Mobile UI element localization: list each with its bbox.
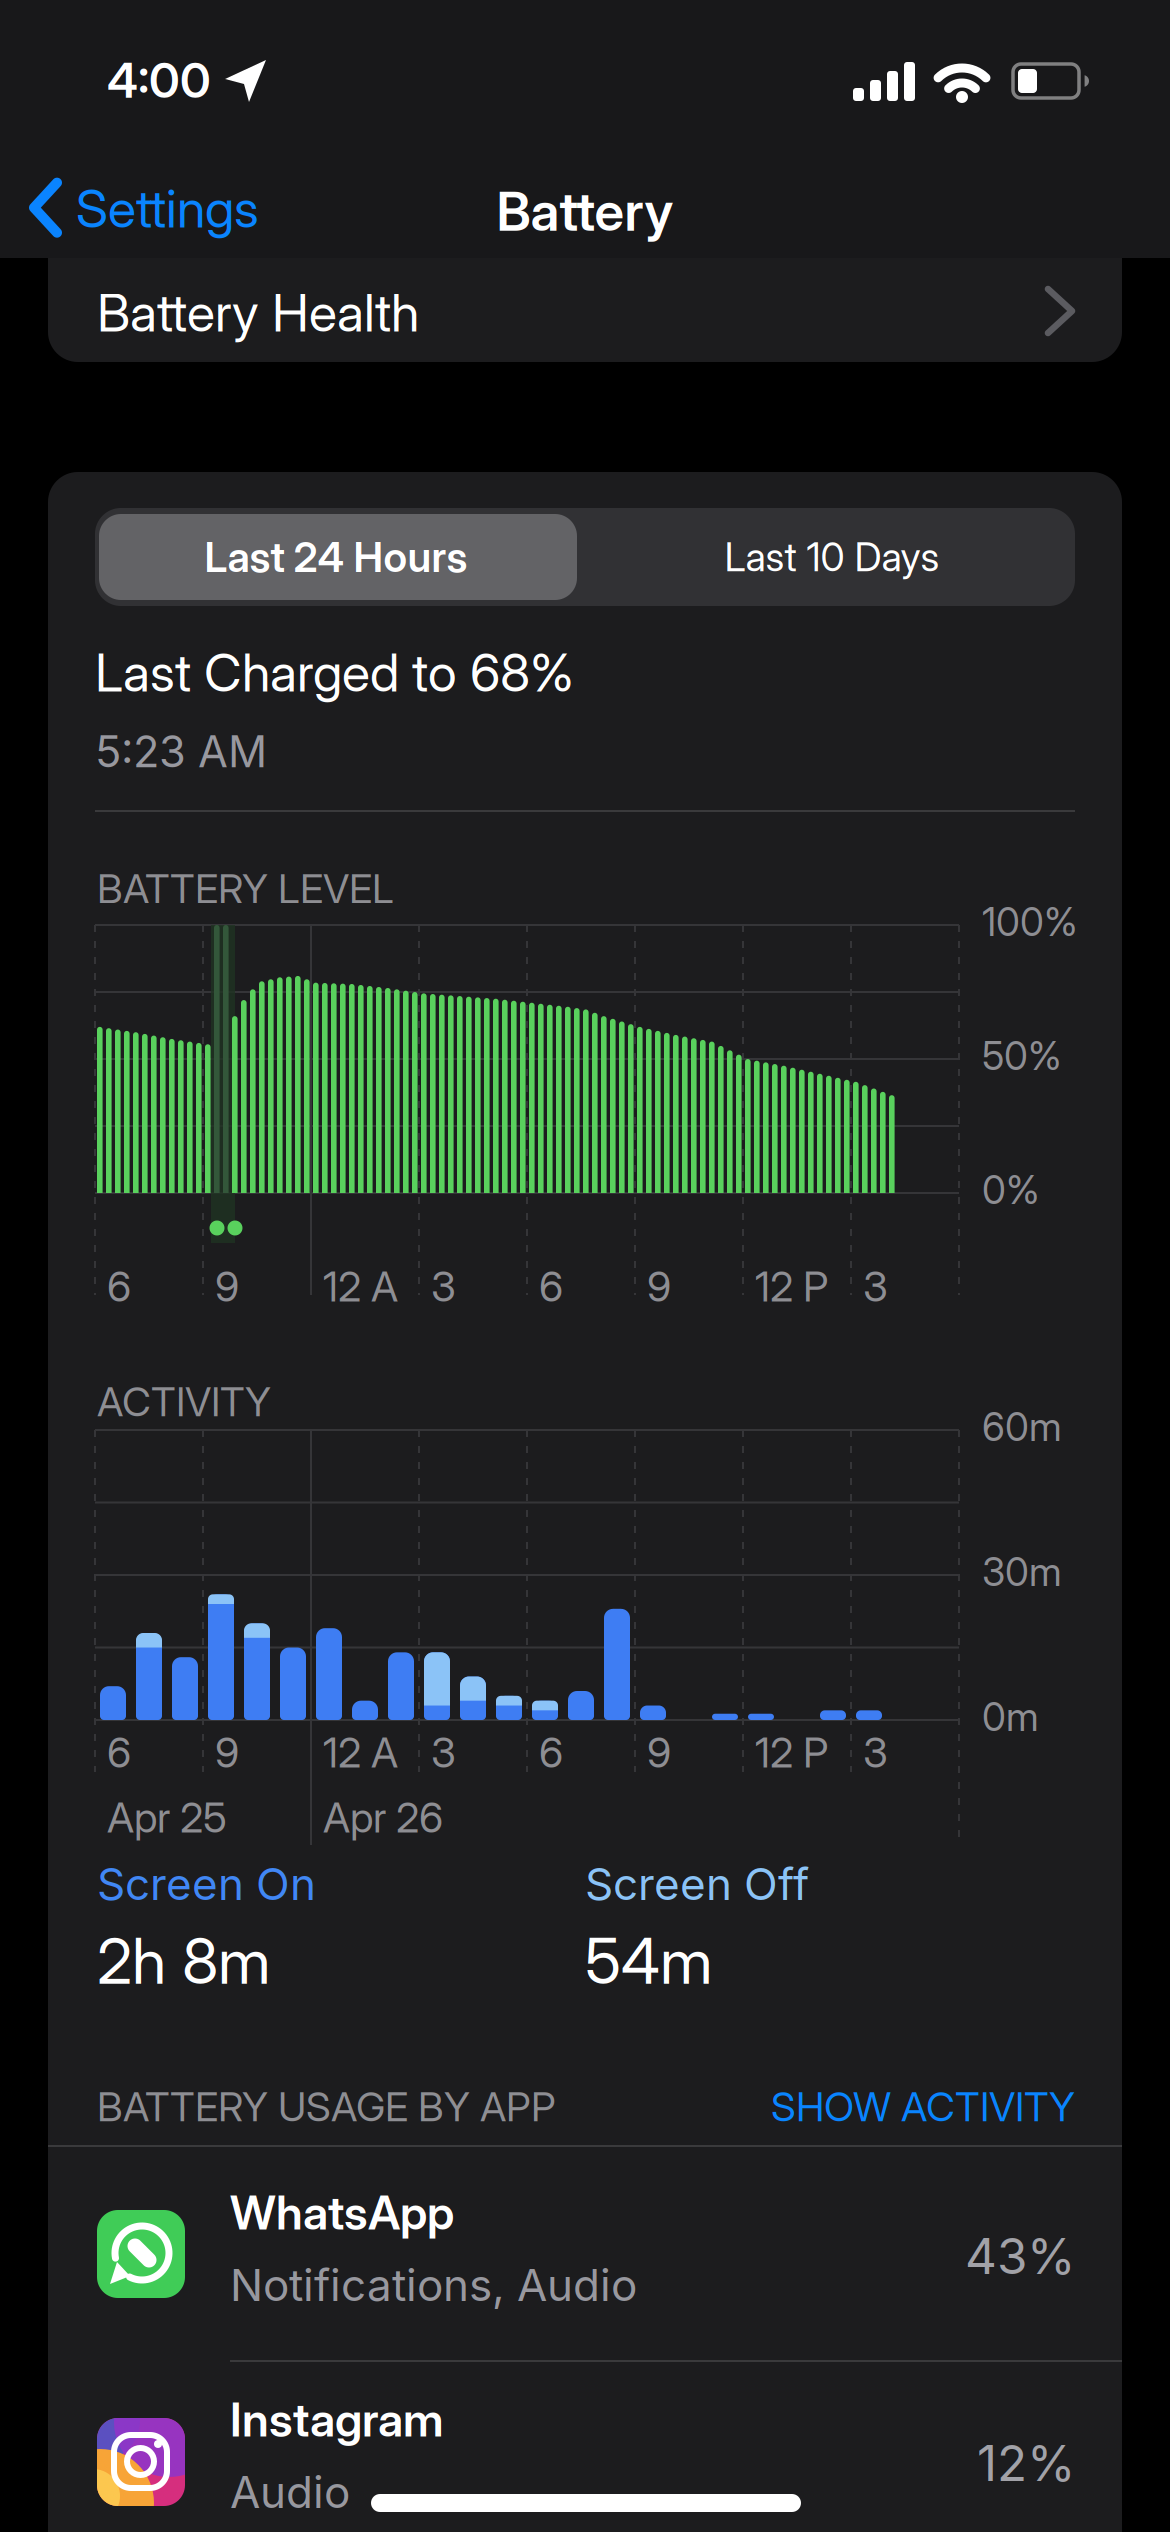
staticText: Last 10 Days	[724, 534, 939, 580]
staticText: 6	[539, 1262, 563, 1311]
staticText: 30m	[982, 1549, 1062, 1595]
staticText: Settings	[76, 178, 259, 239]
staticText: Instagram	[230, 2392, 444, 2447]
staticText: Battery	[496, 180, 673, 243]
button[interactable]: Screen Off	[585, 1858, 809, 1998]
staticText: 6	[539, 1728, 563, 1777]
button[interactable]: SHOW ACTIVITY	[625, 2083, 1075, 2130]
staticText: Last Charged to 68%	[95, 642, 574, 703]
staticText: SHOW ACTIVITY	[771, 2083, 1075, 2130]
staticText: Apr 26	[323, 1793, 443, 1842]
staticText: Audio	[230, 2466, 350, 2518]
staticText: 9	[215, 1728, 239, 1777]
staticText: BATTERY USAGE BY APP	[97, 2083, 556, 2130]
staticText: 12 A	[323, 1262, 398, 1311]
staticText: 54m	[585, 1924, 713, 1998]
button[interactable]: Screen On	[97, 1858, 316, 1998]
staticText: 3	[863, 1728, 888, 1777]
staticText: 3	[431, 1728, 456, 1777]
staticText: Apr 25	[107, 1793, 227, 1842]
staticText: 9	[647, 1728, 671, 1777]
button[interactable]: WhatsApp	[48, 2147, 1122, 2361]
button[interactable]: Last 10 Days	[591, 508, 1073, 606]
staticText: 5:23 AM	[95, 726, 267, 777]
staticText: Last 24 Hours	[204, 533, 467, 581]
staticText: 4:00	[107, 52, 211, 109]
staticText: 50%	[982, 1033, 1062, 1079]
staticText: 12 P	[755, 1262, 828, 1311]
staticText: 12%	[977, 2434, 1075, 2492]
staticText: Notifications, Audio	[230, 2259, 637, 2311]
staticText: 3	[431, 1262, 456, 1311]
staticText: 60m	[982, 1404, 1062, 1450]
staticText: Screen Off	[585, 1858, 809, 1910]
staticText: 100%	[982, 899, 1078, 945]
staticText: ACTIVITY	[97, 1378, 271, 1425]
staticText: Battery Health	[97, 282, 419, 343]
staticText: 6	[107, 1262, 131, 1311]
button[interactable]: Last 24 Hours	[95, 508, 577, 606]
staticText: BATTERY LEVEL	[97, 865, 394, 912]
staticText: 2h 8m	[97, 1924, 271, 1998]
staticText: 3	[863, 1262, 888, 1311]
staticText: 0%	[982, 1167, 1040, 1213]
staticText: Screen On	[97, 1858, 316, 1910]
staticText: 0m	[982, 1694, 1039, 1740]
button[interactable]: Instagram	[48, 2362, 1122, 2532]
button[interactable]: Battery Health	[48, 270, 1170, 2532]
staticText: 6	[107, 1728, 131, 1777]
staticText: 12 P	[755, 1728, 828, 1777]
staticText: 9	[647, 1262, 671, 1311]
staticText: 9	[215, 1262, 239, 1311]
staticText: 12 A	[323, 1728, 398, 1777]
button[interactable]: Settings	[30, 178, 259, 239]
staticText: 43%	[965, 2227, 1075, 2285]
staticText: WhatsApp	[230, 2185, 454, 2240]
